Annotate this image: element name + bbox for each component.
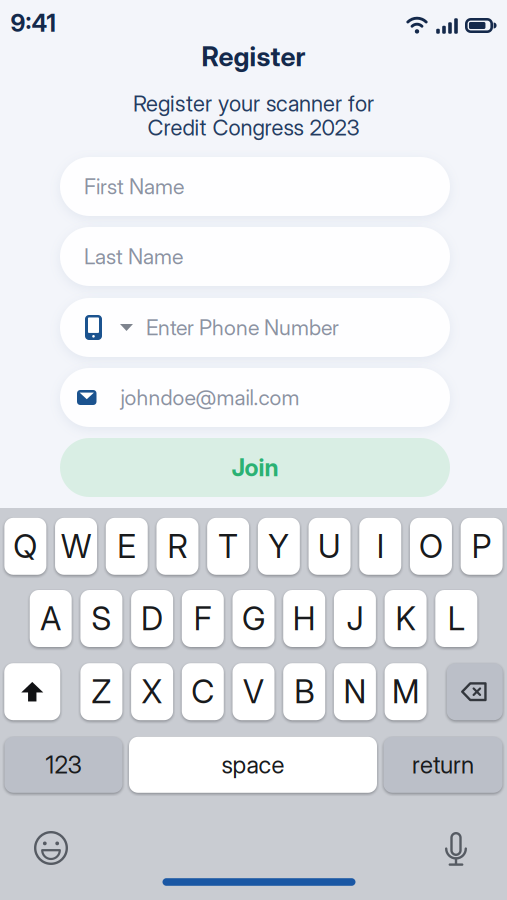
staticText: First Name xyxy=(84,174,184,199)
button[interactable]: space xyxy=(129,737,377,793)
button[interactable]: return xyxy=(383,737,502,793)
staticText: Enter Phone Number xyxy=(146,315,339,340)
button[interactable]: G xyxy=(232,590,274,647)
button[interactable]: J xyxy=(334,590,376,647)
button[interactable]: M xyxy=(385,663,427,720)
button[interactable]: Shift xyxy=(4,663,60,720)
button[interactable]: R xyxy=(156,518,198,575)
staticText: G xyxy=(242,600,265,637)
button[interactable]: N xyxy=(334,663,376,720)
staticText: Last Name xyxy=(84,244,183,269)
button[interactable]: Z xyxy=(80,663,122,720)
staticText: Join xyxy=(231,453,278,482)
button[interactable]: V xyxy=(232,663,274,720)
staticText: M xyxy=(392,673,419,711)
button[interactable]: H xyxy=(283,590,325,647)
staticText: Y xyxy=(268,527,289,565)
button[interactable]: F xyxy=(182,590,224,647)
staticText: 123 xyxy=(45,751,81,779)
staticText: W xyxy=(61,527,91,565)
button[interactable]: O xyxy=(410,518,452,575)
staticText: J xyxy=(346,600,363,637)
staticText: O xyxy=(419,527,443,565)
staticText: N xyxy=(343,673,366,711)
staticText: A xyxy=(40,600,61,637)
staticText: V xyxy=(243,673,264,711)
button[interactable]: S xyxy=(80,590,122,647)
button[interactable]: A xyxy=(30,590,72,647)
button[interactable]: K xyxy=(385,590,427,647)
staticText: L xyxy=(448,600,465,637)
staticText: C xyxy=(191,673,214,711)
button[interactable]: First Name xyxy=(60,157,450,216)
button[interactable]: X xyxy=(131,663,173,720)
button[interactable]: Enter Phone Number xyxy=(60,298,450,357)
staticText: Register your scanner for xyxy=(133,90,374,117)
staticText: johndoe@mail.com xyxy=(120,385,299,410)
button[interactable]: johndoe@mail.com xyxy=(60,368,450,427)
button[interactable]: D xyxy=(131,590,173,647)
button[interactable]: Y xyxy=(258,518,300,575)
button[interactable]: E xyxy=(106,518,148,575)
staticText: P xyxy=(472,527,492,565)
staticText: I xyxy=(377,527,384,565)
button[interactable]: I xyxy=(359,518,401,575)
button[interactable]: C xyxy=(182,663,224,720)
button[interactable]: U xyxy=(308,518,350,575)
staticText: return xyxy=(412,751,474,779)
staticText: Register xyxy=(201,41,305,72)
staticText: K xyxy=(396,600,416,637)
staticText: 9:41 xyxy=(10,9,55,37)
staticText: S xyxy=(91,600,111,637)
button[interactable]: T xyxy=(207,518,249,575)
staticText: H xyxy=(293,600,316,637)
button[interactable]: P xyxy=(461,518,503,575)
button[interactable]: Emoji xyxy=(34,831,68,865)
button[interactable]: B xyxy=(283,663,325,720)
staticText: R xyxy=(167,527,187,565)
staticText: E xyxy=(117,527,136,565)
button[interactable]: Last Name xyxy=(60,227,450,286)
staticText: space xyxy=(221,751,284,779)
staticText: D xyxy=(141,600,163,637)
button[interactable]: W xyxy=(55,518,97,575)
button[interactable]: Delete xyxy=(447,663,503,720)
staticText: F xyxy=(194,600,212,637)
staticText: B xyxy=(294,673,314,711)
staticText: T xyxy=(218,527,238,565)
button[interactable]: 123 xyxy=(4,737,122,793)
staticText: Q xyxy=(13,527,37,565)
button[interactable]: Dictation xyxy=(445,832,467,866)
button[interactable]: Join xyxy=(60,438,450,497)
staticText: U xyxy=(318,527,341,565)
staticText: Z xyxy=(91,673,111,711)
staticText: X xyxy=(142,673,163,711)
staticText: Credit Congress 2023 xyxy=(147,114,359,141)
button[interactable]: L xyxy=(435,590,477,647)
button[interactable]: Q xyxy=(4,518,46,575)
